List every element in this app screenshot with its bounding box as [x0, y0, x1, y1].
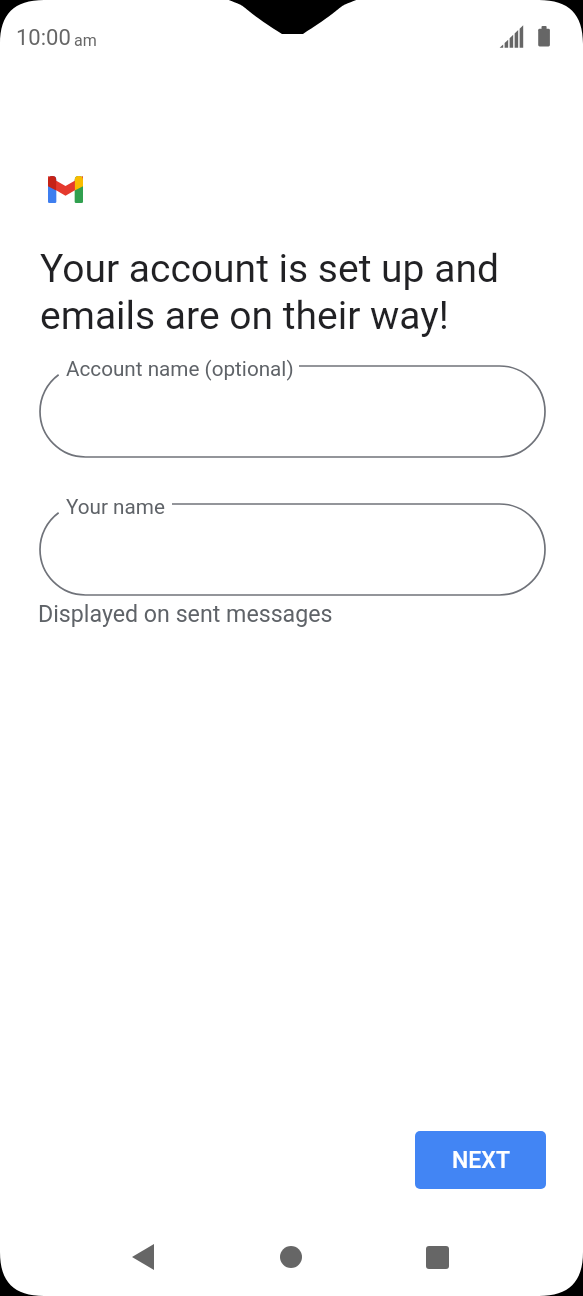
staticText: Account name (optional): [66, 357, 294, 381]
button[interactable]: NEXT: [415, 1131, 546, 1189]
button[interactable]: Account name (optional): [40, 366, 545, 457]
button[interactable]: Back: [113, 1227, 173, 1287]
button[interactable]: Your name: [40, 504, 545, 595]
staticText: Displayed on sent messages: [38, 600, 333, 627]
staticText: Your account is set up and emails are on…: [40, 246, 550, 339]
staticText: am: [74, 31, 97, 50]
staticText: NEXT: [452, 1147, 510, 1174]
button[interactable]: Home: [261, 1227, 321, 1287]
staticText: 10:00: [16, 25, 71, 51]
button[interactable]: Recent apps: [407, 1227, 467, 1287]
staticText: Your name: [66, 495, 165, 519]
